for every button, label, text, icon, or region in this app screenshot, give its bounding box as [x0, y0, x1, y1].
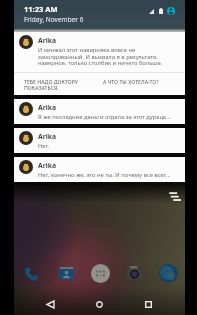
button[interactable]: Arika: [14, 32, 185, 95]
other: Battery: [159, 8, 163, 14]
staticText: Arika: [38, 132, 57, 141]
button[interactable]: User: [167, 7, 175, 15]
staticText: И кинжал этот наверняка вовсе не заколдо…: [38, 46, 180, 67]
button[interactable]: ТЕБЕ НАДО ДОКТОРУ ПОКАЗАТЬСЯ.: [14, 73, 99, 95]
button[interactable]: Back: [26, 293, 75, 315]
button[interactable]: Contacts: [49, 259, 83, 287]
staticText: Arika: [38, 161, 57, 170]
button[interactable]: А ЧТО ТЫ ХОТЕЛА-ТО?: [99, 73, 185, 95]
other: Signal: [149, 9, 154, 14]
staticText: Arika: [38, 36, 57, 45]
staticText: 11:23 AM: [24, 4, 58, 14]
button[interactable]: Apps: [83, 259, 117, 287]
staticText: Нет.: [38, 142, 50, 150]
button[interactable]: Arika: [14, 128, 185, 153]
staticText: Arika: [38, 103, 57, 112]
staticText: Friday, November 6: [24, 15, 84, 24]
button[interactable]: Arika: [14, 99, 185, 124]
button[interactable]: Home: [75, 293, 124, 315]
button[interactable]: Browser: [151, 259, 185, 287]
button[interactable]: Arika: [14, 157, 185, 182]
staticText: ТЕБЕ НАДО ДОКТОРУ ПОКАЗАТЬСЯ.: [24, 78, 79, 92]
staticText: Я же последние деньги отдала за этот дур…: [38, 113, 171, 121]
staticText: А ЧТО ТЫ ХОТЕЛА-ТО?: [103, 78, 159, 85]
button[interactable]: Camera: [117, 259, 151, 287]
staticText: Нет, конечно же, это не ты. И почему все…: [38, 171, 171, 179]
button[interactable]: Phone: [14, 259, 49, 287]
button[interactable]: Notification settings: [169, 190, 183, 204]
button[interactable]: Recents: [124, 293, 173, 315]
